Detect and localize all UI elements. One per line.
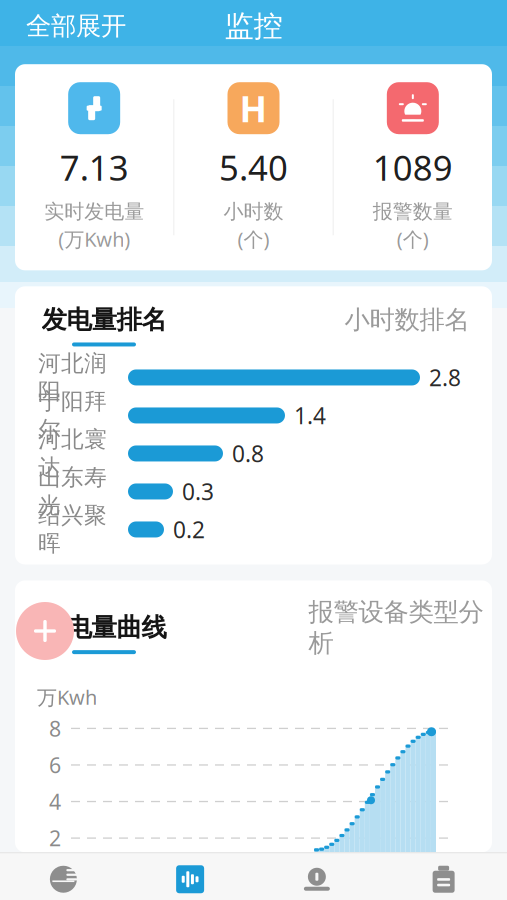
staticText: 0.2 (173, 514, 205, 544)
staticText: 1089 (373, 144, 453, 190)
button[interactable]: 工作 (253, 861, 380, 900)
staticText: 全部展开 (26, 11, 126, 42)
staticText: (个) (237, 226, 269, 252)
button[interactable]: Add (16, 602, 74, 660)
staticText: 万Kwh (37, 684, 97, 710)
staticText: 2.8 (429, 362, 461, 392)
button[interactable]: 发电量排名 (29, 304, 179, 346)
staticText: 0.8 (232, 438, 264, 468)
staticText: 监控 (224, 8, 282, 44)
button[interactable]: 报警设备类型分析 (306, 596, 486, 670)
staticText: 山东寿光 (38, 464, 107, 519)
button[interactable]: 监控 (127, 861, 254, 900)
button[interactable]: 报告 (380, 861, 507, 900)
staticText: 4 (49, 787, 61, 816)
staticText: 实时发电量 (44, 199, 144, 224)
staticText: (个) (397, 226, 429, 252)
staticText: 5.40 (219, 144, 288, 190)
staticText: 绍兴聚晖 (38, 502, 107, 557)
button[interactable]: H (174, 82, 333, 252)
staticText: 2 (49, 824, 61, 852)
staticText: 报警设备类型分析 (308, 596, 483, 659)
staticText: 0.3 (182, 476, 214, 506)
button[interactable]: 1089 (334, 82, 492, 252)
staticText: 发电量排名 (41, 304, 166, 335)
button[interactable]: 发电量曲线 (29, 612, 179, 654)
staticText: (万Kwh) (58, 226, 130, 252)
staticText: 6 (49, 751, 61, 779)
button[interactable]: 首页 (0, 861, 127, 900)
staticText: 1.4 (294, 400, 326, 430)
button[interactable]: 全部展开 (18, 5, 134, 48)
staticText: 7.13 (60, 144, 129, 190)
staticText: 发电量曲线 (41, 612, 166, 643)
staticText: 河北润阳 (38, 350, 107, 405)
button[interactable]: 小时数排名 (332, 304, 482, 346)
staticText: 8 (49, 714, 61, 743)
staticText: H (239, 84, 267, 132)
button[interactable]: 7.13 (15, 82, 173, 252)
staticText: 报警数量 (373, 199, 453, 224)
staticText: 河北寰达 (38, 426, 107, 481)
staticText: 宁阳拜尔 (38, 388, 107, 443)
staticText: 小时数 (223, 199, 283, 224)
staticText: 小时数排名 (344, 304, 469, 335)
